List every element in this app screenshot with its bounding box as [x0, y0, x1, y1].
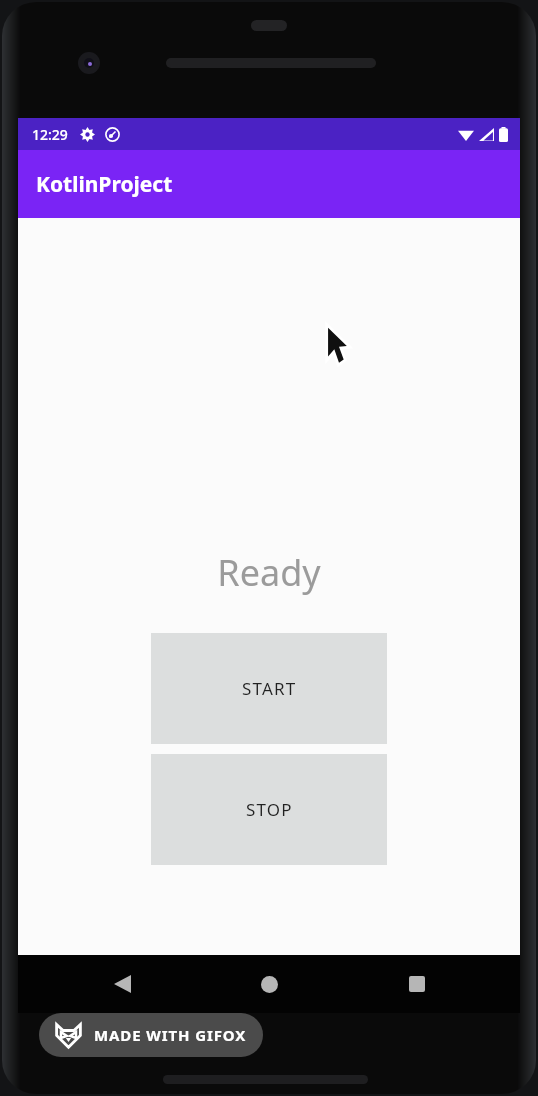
staticText: Ready — [217, 548, 321, 597]
staticText: MADE WITH GIFOX — [94, 1025, 247, 1045]
button[interactable]: START — [151, 633, 387, 744]
staticText: KotlinProject — [36, 170, 173, 199]
staticText: STOP — [246, 798, 293, 821]
button[interactable]: Home — [245, 960, 293, 1008]
button[interactable]: Recent apps — [393, 960, 441, 1008]
staticText: 12:29 — [32, 125, 68, 144]
button[interactable]: Back — [98, 960, 146, 1008]
staticText: START — [242, 677, 297, 700]
button[interactable]: STOP — [151, 754, 387, 865]
